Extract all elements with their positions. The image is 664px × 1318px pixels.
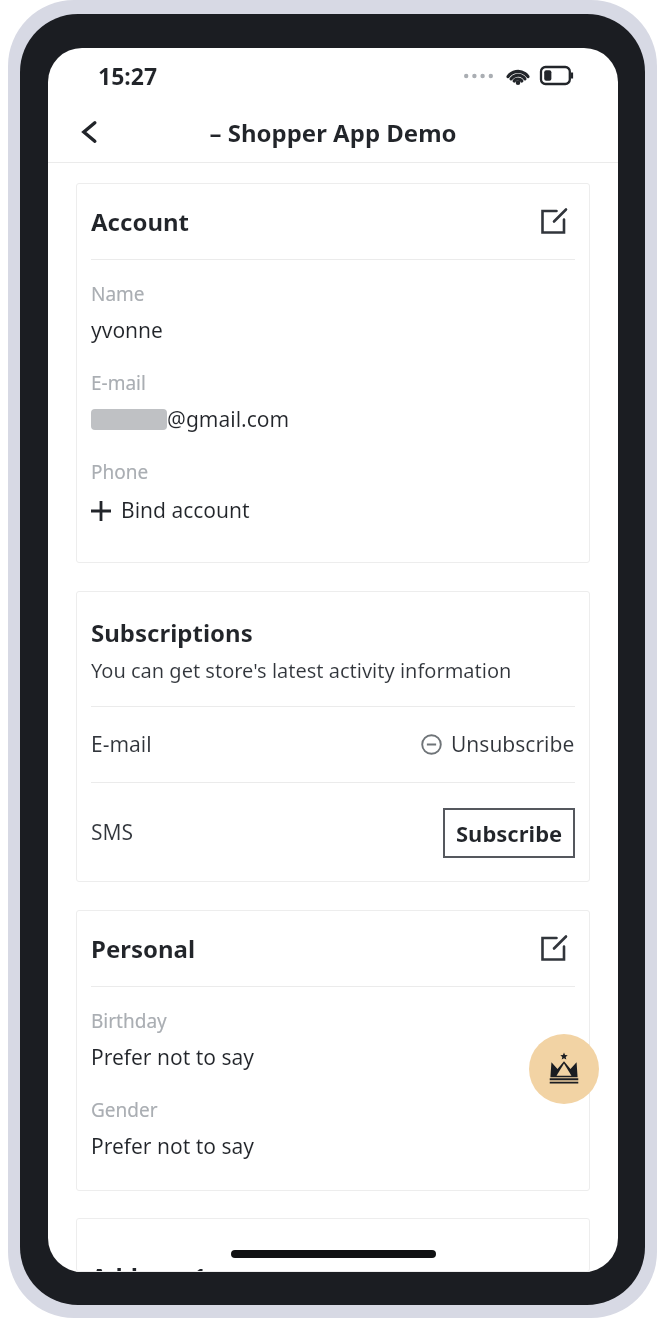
staticText: E-mail xyxy=(91,370,146,396)
staticText: Name xyxy=(91,281,145,307)
button[interactable]: Edit xyxy=(531,926,575,970)
staticText: Prefer not to say xyxy=(91,1043,255,1072)
button[interactable]: Subscribe xyxy=(443,808,575,858)
staticText: yvonne xyxy=(91,316,163,345)
button[interactable]: E-mail xyxy=(91,707,575,782)
staticText: Birthday xyxy=(91,1008,167,1034)
staticText: E-mail xyxy=(91,730,421,759)
staticText: You can get store's latest activity info… xyxy=(91,657,512,684)
staticText: Personal xyxy=(91,932,531,965)
staticText: Unsubscribe xyxy=(451,730,575,759)
staticText: Account xyxy=(91,205,531,238)
staticText: SMS xyxy=(91,818,443,847)
staticText: – Shopper App Demo xyxy=(209,116,457,149)
staticText: @gmail.com xyxy=(167,405,290,434)
button[interactable]: Bind account xyxy=(91,492,250,529)
button[interactable]: Back xyxy=(66,108,114,156)
staticText: Bind account xyxy=(121,496,250,525)
staticText: 15:27 xyxy=(98,60,158,91)
staticText: Subscribe xyxy=(456,818,563,848)
staticText: Address 1 xyxy=(91,1260,207,1272)
staticText: Phone xyxy=(91,459,149,485)
button[interactable]: Edit xyxy=(531,199,575,243)
staticText: Subscriptions xyxy=(91,616,253,649)
staticText: Prefer not to say xyxy=(91,1132,255,1161)
button[interactable]: Rewards xyxy=(529,1034,599,1104)
staticText: Gender xyxy=(91,1097,158,1123)
